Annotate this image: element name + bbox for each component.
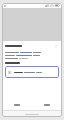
button[interactable] [2,100,32,110]
button[interactable]: More options [53,43,59,49]
button[interactable] [5,66,59,78]
button[interactable] [32,100,62,110]
other: Illustration [2,8,62,41]
